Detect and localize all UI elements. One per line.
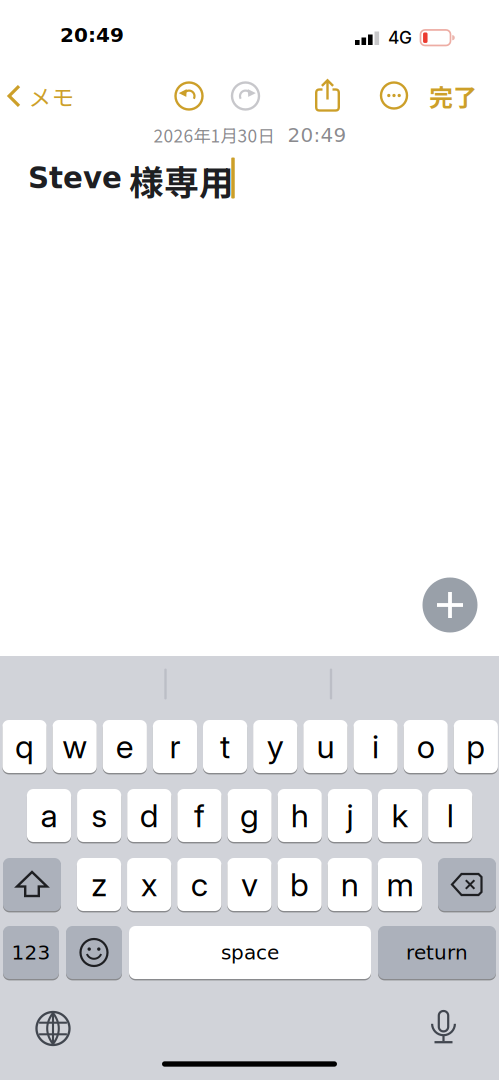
staticText: d [140,796,159,835]
button[interactable]: return [378,925,496,980]
staticText: m [386,865,413,904]
button[interactable]: k [378,788,422,843]
button[interactable]: q [2,719,47,774]
button[interactable]: o [404,719,448,774]
button[interactable]: c [177,857,221,912]
button[interactable]: a [27,788,71,843]
staticText: u [316,727,334,766]
staticText: q [15,727,34,766]
button[interactable]: d [127,788,171,843]
button[interactable]: s [77,788,121,843]
button[interactable]: w [53,719,97,774]
staticText: Steve [28,161,122,195]
staticText: メモ [28,80,74,112]
button[interactable]: Redo [232,82,259,109]
button[interactable]: Add [422,577,477,632]
staticText: 123 [11,941,50,964]
staticText: p [466,727,485,766]
staticText: x [141,865,158,904]
button[interactable]: e [103,719,147,774]
staticText: r [169,727,180,766]
staticText: 20:49 [287,123,346,147]
button[interactable]: 完了 [429,79,477,113]
staticText: 20:49 [60,23,124,47]
button[interactable]: u [303,719,347,774]
staticText: i [372,727,379,766]
staticText: z [91,865,107,904]
button[interactable]: r [153,719,197,774]
staticText: e [116,727,134,766]
staticText: f [194,796,205,835]
staticText: h [291,796,309,835]
button[interactable]: i [353,719,398,774]
staticText: o [417,727,435,766]
staticText: n [341,865,359,904]
staticText: 完了 [429,79,477,113]
button[interactable]: v [227,857,271,912]
staticText: t [220,727,230,766]
button[interactable]: m [378,857,422,912]
staticText: k [392,796,409,835]
staticText: b [290,865,309,904]
button[interactable]: t [203,719,247,774]
button[interactable]: l [428,788,472,843]
staticText: g [240,796,259,835]
button[interactable]: y [253,719,297,774]
button[interactable]: Next keyboard [36,1012,69,1045]
staticText: j [346,796,353,835]
staticText: w [62,727,87,766]
button[interactable]: x [127,857,171,912]
button[interactable]: z [77,857,121,912]
button[interactable]: Emoji [66,925,122,980]
staticText: 4G [388,27,412,48]
staticText: v [241,865,258,904]
button[interactable]: Share [315,78,340,111]
button[interactable]: Shift [3,857,61,912]
staticText: y [267,727,284,766]
button[interactable]: j [328,788,372,843]
button[interactable]: f [177,788,221,843]
staticText: space [221,941,279,964]
staticText: 様専用 [129,155,234,206]
button[interactable]: space [129,925,371,980]
button[interactable]: メモ [7,80,74,112]
staticText: 2026年1月30日 [153,122,274,148]
staticText: a [40,796,57,835]
button[interactable]: n [328,857,372,912]
staticText: return [406,941,468,964]
staticText: s [91,796,107,835]
button[interactable]: b [277,857,322,912]
button[interactable]: More [381,82,407,108]
staticText: l [447,796,454,835]
button[interactable]: g [227,788,272,843]
button[interactable]: 123 [3,925,59,980]
button[interactable]: Delete [438,857,496,912]
button[interactable]: h [278,788,322,843]
button[interactable]: Undo [175,82,202,109]
staticText: c [191,865,208,904]
button[interactable]: p [454,719,498,774]
button[interactable]: Dictate [432,1011,455,1043]
